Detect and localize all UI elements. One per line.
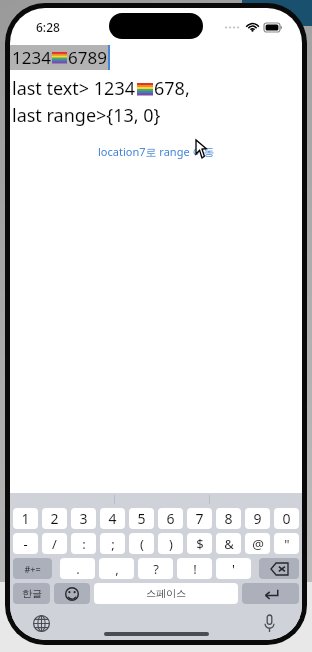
button[interactable]: #+= <box>13 558 52 579</box>
staticText: 스페이스 <box>146 587 186 600</box>
staticText: 4 <box>108 509 117 528</box>
staticText: 678, <box>154 76 190 101</box>
staticText: ! <box>193 560 197 578</box>
staticText: - <box>23 535 28 553</box>
staticText: ' <box>232 560 235 578</box>
staticText: 6 <box>166 509 175 528</box>
staticText: 3 <box>79 509 88 528</box>
button[interactable]: 7 <box>187 508 212 529</box>
staticText: 한글 <box>22 587 42 600</box>
button[interactable]: Change keyboard <box>30 612 52 634</box>
button[interactable]: 4 <box>100 508 125 529</box>
button[interactable]: ) <box>158 533 183 554</box>
staticText: 5 <box>137 509 146 528</box>
staticText: #+= <box>24 563 41 575</box>
staticText: , <box>115 560 119 578</box>
button[interactable]: 9 <box>245 508 270 529</box>
button[interactable]: Emoji <box>54 583 90 604</box>
button[interactable]: $ <box>187 533 212 554</box>
staticText: . <box>76 560 80 578</box>
staticText: 6:28 <box>36 19 60 35</box>
staticText: last text> 1234 <box>12 76 136 101</box>
button[interactable]: Backspace <box>259 558 299 579</box>
staticText: last range>{13, 0} <box>12 103 161 128</box>
button[interactable]: . <box>60 558 95 579</box>
button[interactable]: 3 <box>71 508 96 529</box>
button[interactable]: 1 <box>13 508 38 529</box>
button[interactable]: 5 <box>129 508 154 529</box>
staticText: ( <box>140 535 144 553</box>
button[interactable]: , <box>99 558 134 579</box>
button[interactable]: 2 <box>42 508 67 529</box>
staticText: 6789 <box>68 46 107 69</box>
staticText: ; <box>111 535 115 553</box>
button[interactable]: 6 <box>158 508 183 529</box>
staticText: 1 <box>21 509 30 528</box>
staticText: & <box>224 535 234 553</box>
button[interactable]: Voice input <box>258 612 280 634</box>
button[interactable]: 8 <box>216 508 241 529</box>
staticText: $ <box>196 535 204 553</box>
button[interactable]: " <box>274 533 299 554</box>
staticText: 9 <box>253 509 262 528</box>
button[interactable]: Enter <box>242 583 299 604</box>
button[interactable]: 스페이스 <box>94 583 238 604</box>
button[interactable]: ? <box>138 558 173 579</box>
button[interactable]: ( <box>129 533 154 554</box>
staticText: location7로 range 이동 <box>98 144 215 159</box>
button[interactable]: - <box>13 533 38 554</box>
button[interactable]: : <box>71 533 96 554</box>
button[interactable]: 한글 <box>13 583 50 604</box>
staticText: 8 <box>224 509 233 528</box>
staticText: ) <box>169 535 173 553</box>
staticText: 0 <box>282 509 291 528</box>
button[interactable]: ! <box>177 558 212 579</box>
staticText: 2 <box>50 509 59 528</box>
staticText: / <box>52 535 57 553</box>
staticText: 1234 <box>12 46 51 69</box>
button[interactable]: @ <box>245 533 270 554</box>
button[interactable]: 0 <box>274 508 299 529</box>
staticText: ? <box>153 560 159 578</box>
button[interactable]: location7로 range 이동 <box>94 142 219 161</box>
button[interactable]: & <box>216 533 241 554</box>
staticText: 7 <box>195 509 204 528</box>
staticText: " <box>284 535 290 553</box>
button[interactable]: ' <box>216 558 251 579</box>
button[interactable]: / <box>42 533 67 554</box>
staticText: @ <box>252 535 264 553</box>
staticText: : <box>82 535 86 553</box>
button[interactable]: ; <box>100 533 125 554</box>
